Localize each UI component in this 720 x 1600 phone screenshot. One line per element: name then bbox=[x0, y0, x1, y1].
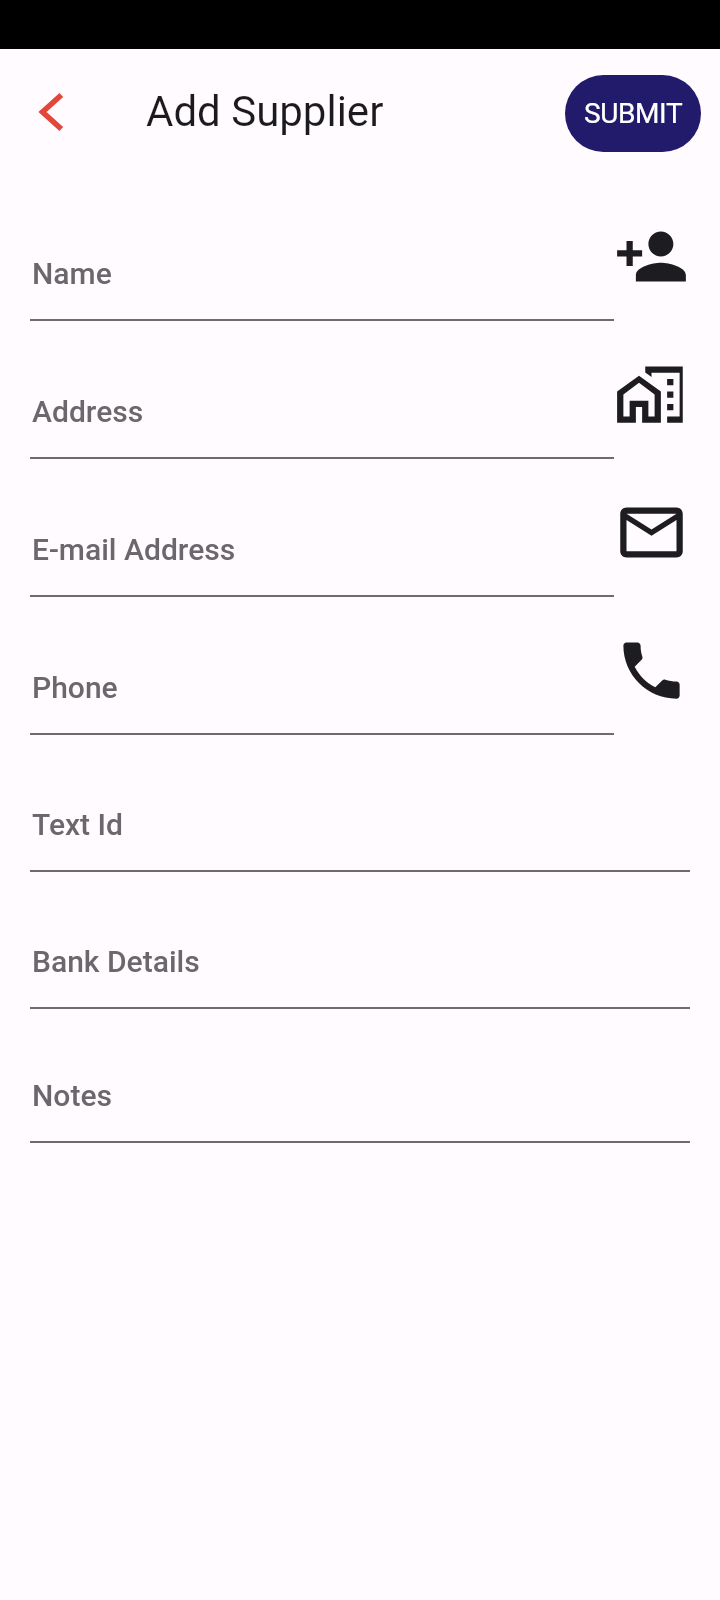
button[interactable] bbox=[30, 659, 614, 736]
staticText: Text Id bbox=[32, 807, 123, 842]
staticText: Name bbox=[32, 256, 112, 291]
button[interactable]: SUBMIT bbox=[565, 75, 701, 152]
button[interactable] bbox=[30, 245, 614, 322]
staticText: Bank Details bbox=[32, 944, 200, 979]
staticText: E-mail Address bbox=[32, 532, 236, 567]
button[interactable] bbox=[30, 933, 690, 1010]
staticText: Phone bbox=[32, 670, 118, 705]
staticText: SUBMIT bbox=[584, 97, 683, 130]
button[interactable] bbox=[30, 521, 614, 598]
button[interactable] bbox=[30, 383, 614, 460]
button[interactable] bbox=[30, 1067, 690, 1144]
staticText: Address bbox=[32, 394, 144, 429]
button[interactable] bbox=[24, 84, 80, 140]
staticText: Notes bbox=[32, 1078, 112, 1113]
staticText: Add Supplier bbox=[146, 87, 384, 136]
button[interactable] bbox=[30, 796, 690, 873]
